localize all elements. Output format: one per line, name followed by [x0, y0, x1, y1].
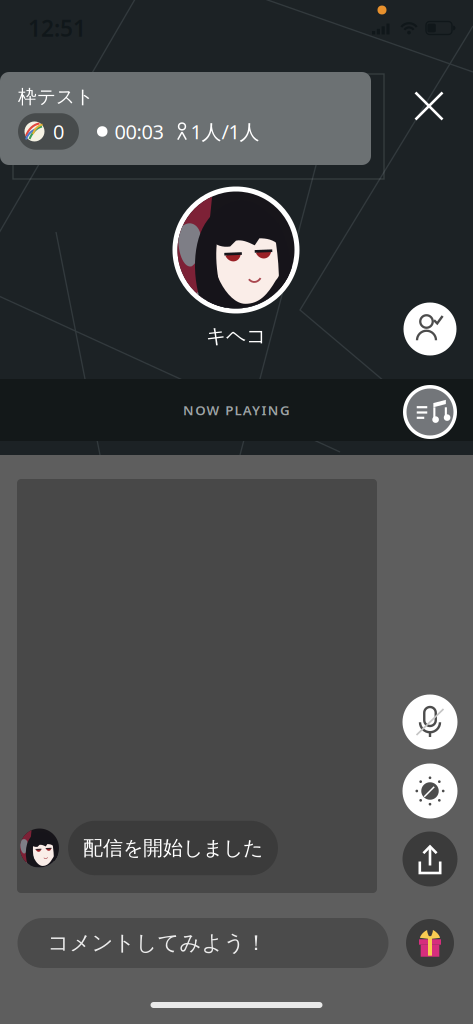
staticText: 00:03 — [114, 118, 163, 145]
button[interactable]: Follow — [403, 302, 456, 355]
staticText: 1人/1人 — [190, 118, 259, 145]
staticText: 0 — [53, 118, 64, 145]
button[interactable]: Effects — [402, 763, 457, 818]
button[interactable]: Playlist — [403, 385, 457, 439]
button[interactable]: Share — [402, 831, 457, 886]
staticText: NOW PLAYING — [183, 401, 290, 419]
staticText: キヘコ — [206, 324, 266, 348]
staticText: 枠テスト — [18, 85, 94, 108]
staticText: コメントしてみよう！ — [47, 930, 266, 956]
staticText: 配信を開始しました — [83, 836, 263, 860]
staticText: 12:51 — [28, 13, 86, 43]
button[interactable]: Close — [401, 78, 457, 134]
button[interactable]: Mute microphone — [402, 694, 457, 749]
button[interactable]: Send gift — [406, 919, 454, 967]
button[interactable]: コメントしてみよう！ — [17, 918, 388, 968]
